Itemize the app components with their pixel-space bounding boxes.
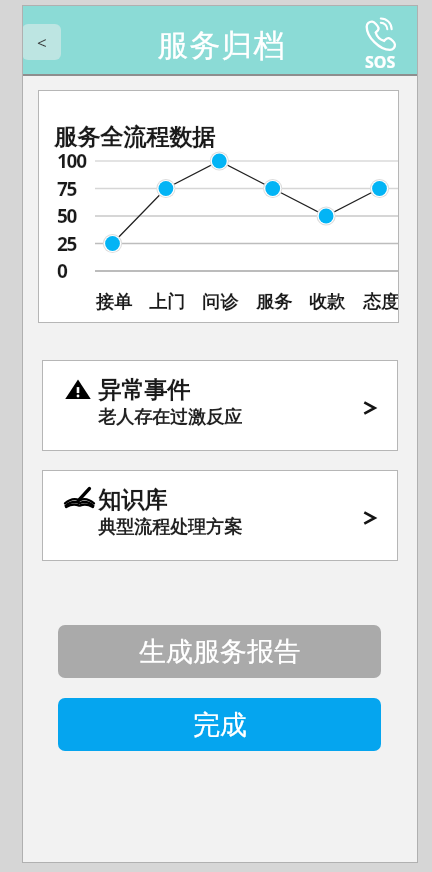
button[interactable]: 异常事件	[42, 360, 398, 451]
staticText: 生成服务报告	[139, 635, 301, 669]
staticText: <	[37, 31, 47, 54]
staticText: 完成	[193, 708, 247, 742]
button[interactable]: 完成	[58, 698, 381, 751]
staticText: 老人存在过激反应	[98, 406, 242, 429]
button[interactable]: SOS emergency call	[358, 20, 402, 68]
staticText: 上门	[149, 291, 185, 314]
staticText: 服务	[256, 291, 292, 314]
staticText: 问诊	[202, 291, 238, 314]
staticText: 典型流程处理方案	[98, 516, 242, 539]
button[interactable]: Back	[22, 24, 61, 60]
staticText: 态度	[363, 291, 399, 314]
staticText: 100	[57, 148, 86, 174]
staticText: SOS	[365, 51, 396, 68]
staticText: 接单	[96, 291, 132, 314]
staticText: 75	[57, 176, 77, 202]
staticText: 50	[57, 203, 77, 229]
staticText: 25	[57, 231, 77, 257]
button[interactable]: 生成服务报告	[58, 625, 381, 678]
button[interactable]: 知识库	[42, 470, 398, 561]
staticText: 知识库	[98, 486, 167, 515]
staticText: 服务归档	[157, 26, 285, 65]
staticText: 异常事件	[98, 376, 190, 405]
staticText: 0	[57, 258, 67, 284]
staticText: 服务全流程数据	[54, 123, 215, 152]
staticText: 收款	[309, 291, 345, 314]
